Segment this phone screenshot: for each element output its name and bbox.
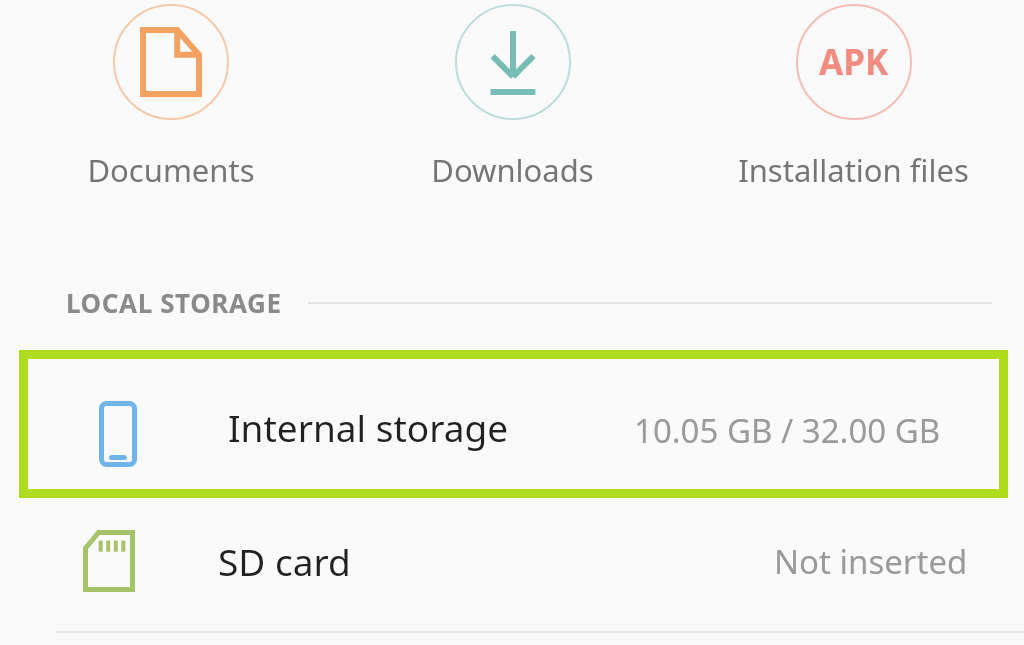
button[interactable]: SD card <box>0 505 1024 617</box>
other: Documents <box>140 27 202 97</box>
button[interactable]: Documents <box>0 0 342 191</box>
other: Downloads <box>479 29 547 95</box>
staticText: SD card <box>218 536 351 586</box>
staticText: 10.05 GB / 32.00 GB <box>634 408 941 453</box>
staticText: APK <box>819 38 889 86</box>
button[interactable]: Internal storage <box>19 350 1008 498</box>
staticText: LOCAL STORAGE <box>66 285 282 320</box>
button[interactable]: Installation files <box>683 0 1024 191</box>
other: Installation files <box>819 38 889 86</box>
staticText: Installation files <box>738 149 969 191</box>
staticText: Not inserted <box>774 539 968 584</box>
staticText: Downloads <box>431 149 594 191</box>
staticText: Documents <box>87 149 255 191</box>
button[interactable]: Downloads <box>342 0 683 191</box>
staticText: Internal storage <box>228 402 509 452</box>
